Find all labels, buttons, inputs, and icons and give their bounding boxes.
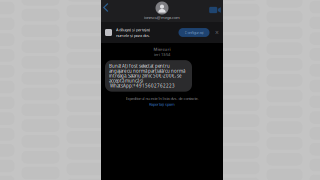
staticText: × <box>215 28 219 37</box>
staticText: Miercuri <box>153 46 170 52</box>
button[interactable]: Raportați spam <box>149 101 175 107</box>
button[interactable]: Dismiss <box>213 28 220 37</box>
button[interactable]: ionescu@mega.com <box>144 0 180 20</box>
button[interactable]: Configurați <box>178 28 209 37</box>
button[interactable]: FaceTime <box>208 3 222 16</box>
staticText: numele și poza dvs. <box>116 33 150 38</box>
staticText: Raportați spam <box>149 101 175 107</box>
staticText: Bună! Ați fost selectat pentru <box>109 63 170 69</box>
staticText: Expeditorul nu este în lista dvs. de con… <box>125 96 198 101</box>
staticText: Adăugați și partajați <box>116 27 150 32</box>
staticText: întreagă. Salariu zilnic 50€-200€, se <box>109 73 181 79</box>
staticText: acceptă muncă și <box>109 78 143 84</box>
staticText: Configurați <box>184 30 203 35</box>
staticText: WhatsApp:+4915602762223 <box>109 83 175 89</box>
staticText: ieri 13:54 <box>154 52 170 57</box>
staticText: angajare cu normă parțială/cu normă <box>109 68 185 74</box>
staticText: ionescu@mega.com <box>144 15 180 20</box>
button[interactable]: Back <box>102 1 114 14</box>
